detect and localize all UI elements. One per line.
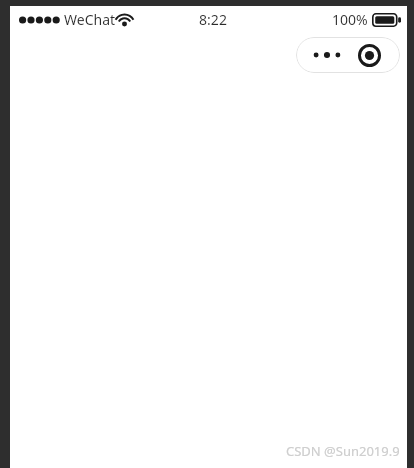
staticText: CSDN @Sun2019.9 [286, 442, 400, 460]
staticText: 8:22 [199, 10, 227, 29]
staticText: WeChat [64, 10, 116, 29]
button[interactable]: Menu and close [296, 37, 400, 73]
staticText: 100% [332, 10, 368, 29]
